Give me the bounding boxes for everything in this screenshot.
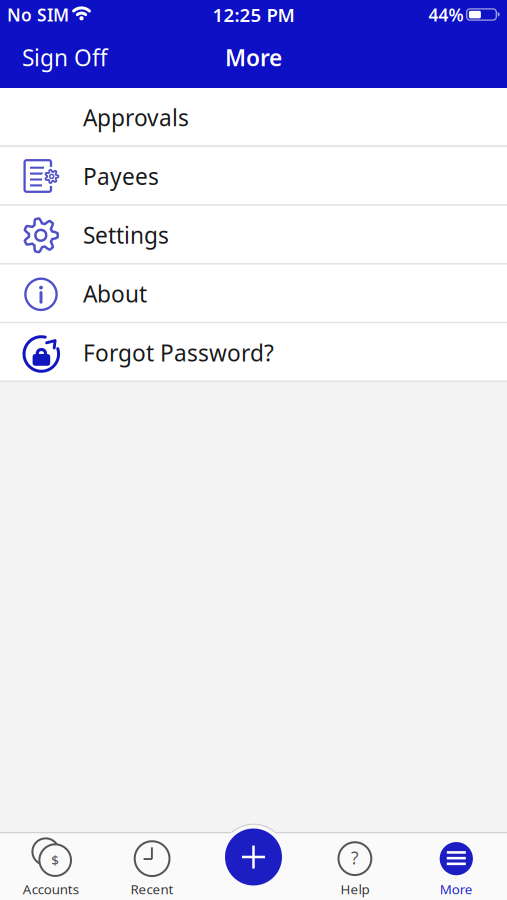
button[interactable]: Add (225, 828, 282, 885)
staticText: 44% (428, 3, 463, 26)
button[interactable]: Sign Off (0, 27, 120, 88)
staticText: Accounts (23, 880, 79, 898)
staticText: About (83, 279, 147, 309)
button[interactable]: More (438, 839, 475, 898)
staticText: Recent (131, 880, 174, 898)
button[interactable]: Payees (0, 147, 507, 206)
button[interactable]: Forgot Password? (0, 323, 507, 382)
button[interactable]: Approvals (0, 88, 507, 147)
button[interactable]: Settings (0, 206, 507, 264)
staticText: No SIM (7, 3, 69, 26)
staticText: 12:25 PM (212, 2, 294, 27)
staticText: Forgot Password? (83, 337, 274, 368)
staticText: ? (351, 846, 359, 869)
staticText: Payees (83, 161, 159, 191)
button[interactable]: ? (336, 839, 373, 898)
button[interactable]: Recent (131, 839, 174, 898)
button[interactable]: About (0, 264, 507, 323)
staticText: Sign Off (22, 42, 108, 72)
staticText: $ (51, 851, 59, 869)
staticText: More (225, 42, 282, 72)
staticText: More (440, 880, 473, 898)
button[interactable]: $ (23, 839, 79, 898)
staticText: Approvals (83, 102, 189, 132)
staticText: Settings (83, 220, 169, 250)
staticText: Help (340, 880, 369, 898)
